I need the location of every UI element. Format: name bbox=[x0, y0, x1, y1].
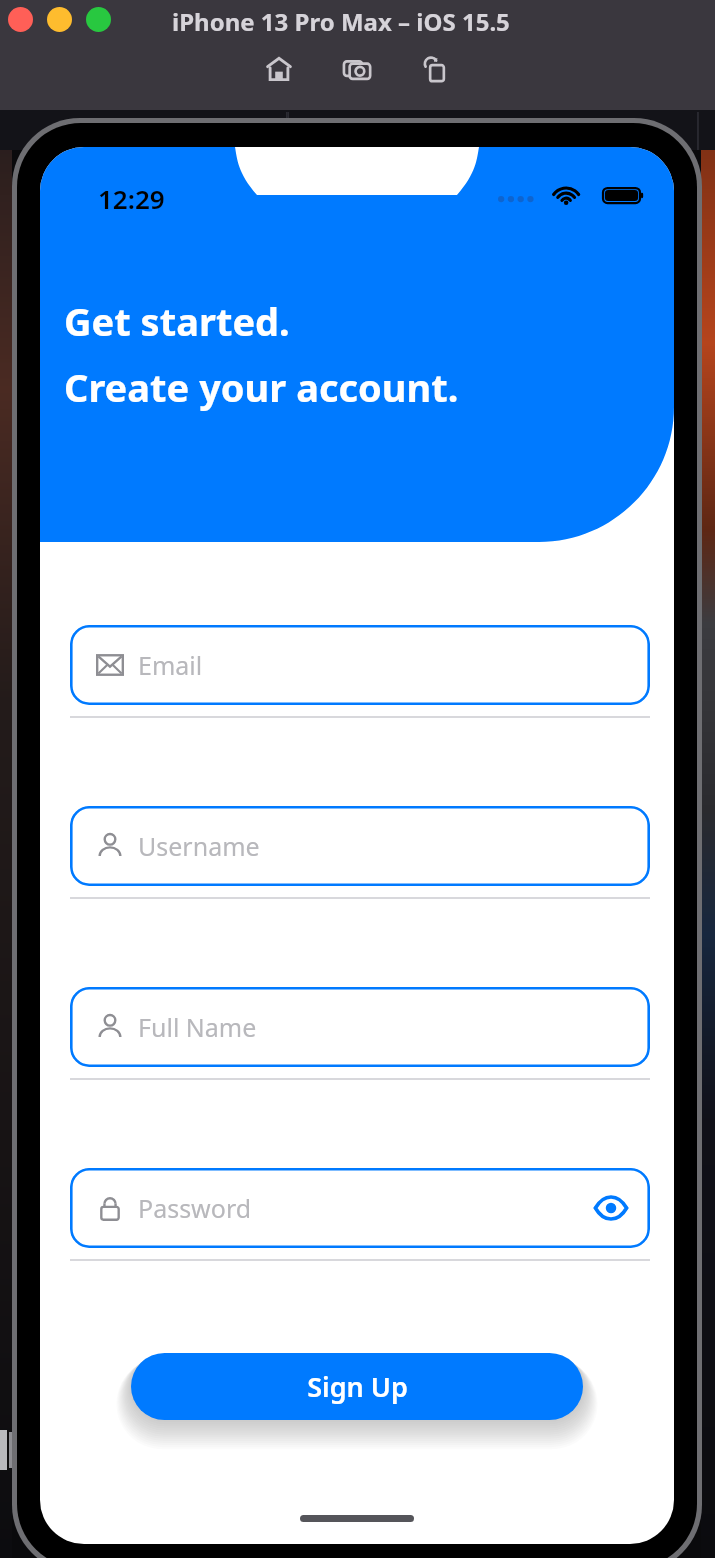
button[interactable] bbox=[47, 7, 72, 32]
button[interactable]: Username bbox=[70, 806, 650, 886]
staticText: Email bbox=[138, 648, 203, 682]
staticText: 12:29 bbox=[98, 181, 165, 216]
button[interactable] bbox=[86, 7, 111, 32]
button[interactable]: Password bbox=[70, 1168, 650, 1248]
staticText: Password bbox=[138, 1191, 252, 1225]
button[interactable]: Home bbox=[260, 50, 298, 88]
staticText: Sign Up bbox=[307, 1368, 408, 1405]
staticText: Get started. bbox=[64, 295, 290, 347]
button[interactable]: Screenshot bbox=[339, 50, 377, 88]
button[interactable] bbox=[8, 7, 33, 32]
staticText: Create your account. bbox=[64, 361, 459, 413]
button[interactable]: Full Name bbox=[70, 987, 650, 1067]
button[interactable]: Sign Up bbox=[131, 1353, 583, 1420]
staticText: iPhone 13 Pro Max – iOS 15.5 bbox=[172, 5, 510, 38]
staticText: Full Name bbox=[138, 1010, 257, 1044]
button[interactable]: Show password bbox=[253, 1191, 628, 1225]
button[interactable]: Rotate bbox=[418, 50, 456, 88]
staticText: Username bbox=[138, 829, 260, 863]
button[interactable]: Email bbox=[70, 625, 650, 705]
